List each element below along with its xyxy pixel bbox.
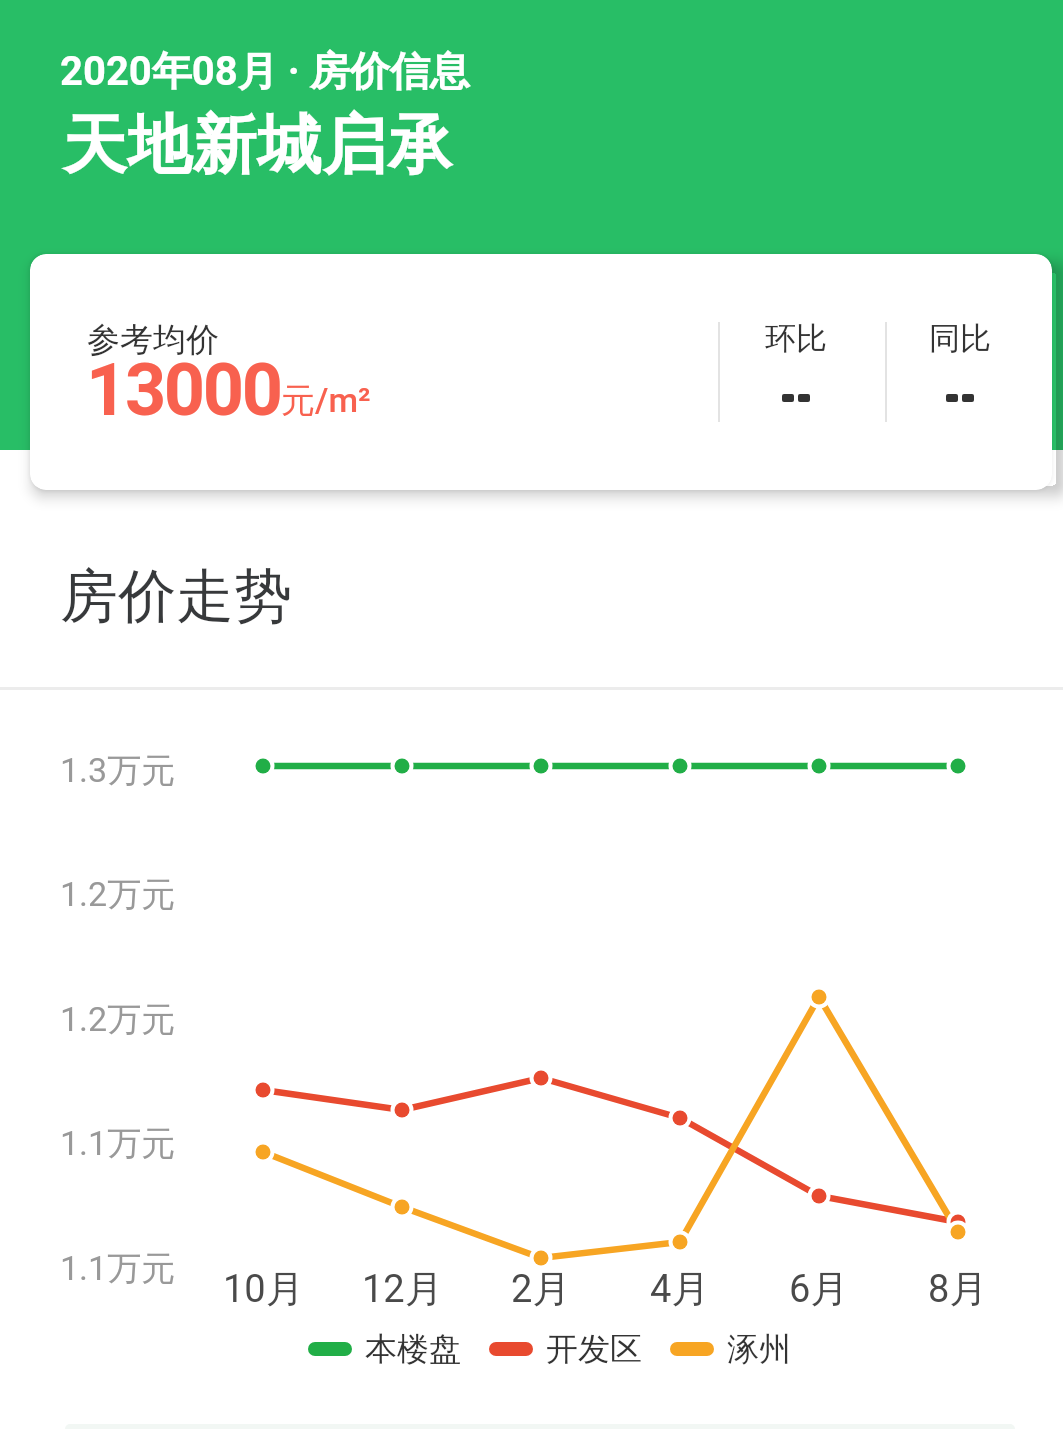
button[interactable]: 同比	[887, 254, 1033, 490]
staticText: 13000	[86, 348, 281, 432]
staticText: 6月	[789, 1265, 849, 1313]
staticText: 1.1万元	[60, 1122, 176, 1165]
staticText: 4月	[650, 1265, 710, 1313]
staticText: 1.3万元	[60, 749, 176, 792]
staticText: 2月	[511, 1265, 571, 1313]
button[interactable]: 环比	[713, 254, 878, 490]
staticText: 2020年08月 · 房价信息	[60, 46, 470, 96]
staticText: 涿州	[727, 1329, 791, 1369]
button[interactable]: 参考均价	[30, 254, 1052, 490]
staticText: 天地新城启承	[62, 105, 452, 186]
staticText: 元/m²	[281, 379, 371, 422]
button[interactable]: 本楼盘	[308, 1329, 461, 1369]
staticText: 参考均价	[87, 319, 219, 361]
staticText: 1.2万元	[60, 998, 176, 1041]
staticText: 房价走势	[60, 560, 292, 633]
staticText: 8月	[928, 1265, 988, 1313]
staticText: 本楼盘	[365, 1329, 461, 1369]
button[interactable]: 开发区	[489, 1329, 642, 1369]
button[interactable]: 涿州	[670, 1329, 791, 1369]
staticText: 同比	[929, 319, 991, 358]
staticText: 1.1万元	[60, 1247, 176, 1290]
staticText: 开发区	[546, 1329, 642, 1369]
staticText: 10月	[223, 1265, 304, 1313]
staticText: 1.2万元	[60, 873, 176, 916]
staticText: 环比	[765, 319, 827, 358]
staticText: 12月	[362, 1265, 443, 1313]
